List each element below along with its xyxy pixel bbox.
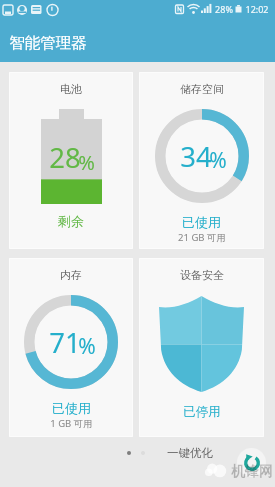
staticText: 28% [215,3,233,15]
staticText: 储存空间 [180,82,224,96]
button[interactable]: 内存 [9,258,133,437]
staticText: 12:02 [245,3,269,15]
staticText: 28 [49,139,81,176]
staticText: 已停用 [183,404,221,420]
button[interactable]: 一键优化 [237,448,266,477]
button[interactable]: 电池 [9,72,133,249]
staticText: 机锋网 [231,463,273,481]
staticText: 一键优化 [167,446,213,460]
staticText: 34 [180,138,212,175]
staticText: 智能管理器 [9,33,87,53]
staticText: 已使用 [52,400,91,416]
staticText: 71 [49,324,81,361]
button[interactable]: 一键优化 [167,446,213,460]
staticText: 内存 [60,268,82,282]
staticText: % [78,149,95,176]
staticText: % [78,332,96,361]
staticText: 已使用 [182,214,221,230]
staticText: 21 GB 可用 [178,231,226,244]
staticText: % [209,146,227,175]
button[interactable]: 储存空间 [139,72,264,249]
button[interactable]: 设备安全 [139,258,264,437]
staticText: 1 GB 可用 [50,417,93,430]
staticText: 电池 [60,82,82,96]
staticText: 设备安全 [180,268,224,282]
staticText: 剩余 [58,213,84,229]
